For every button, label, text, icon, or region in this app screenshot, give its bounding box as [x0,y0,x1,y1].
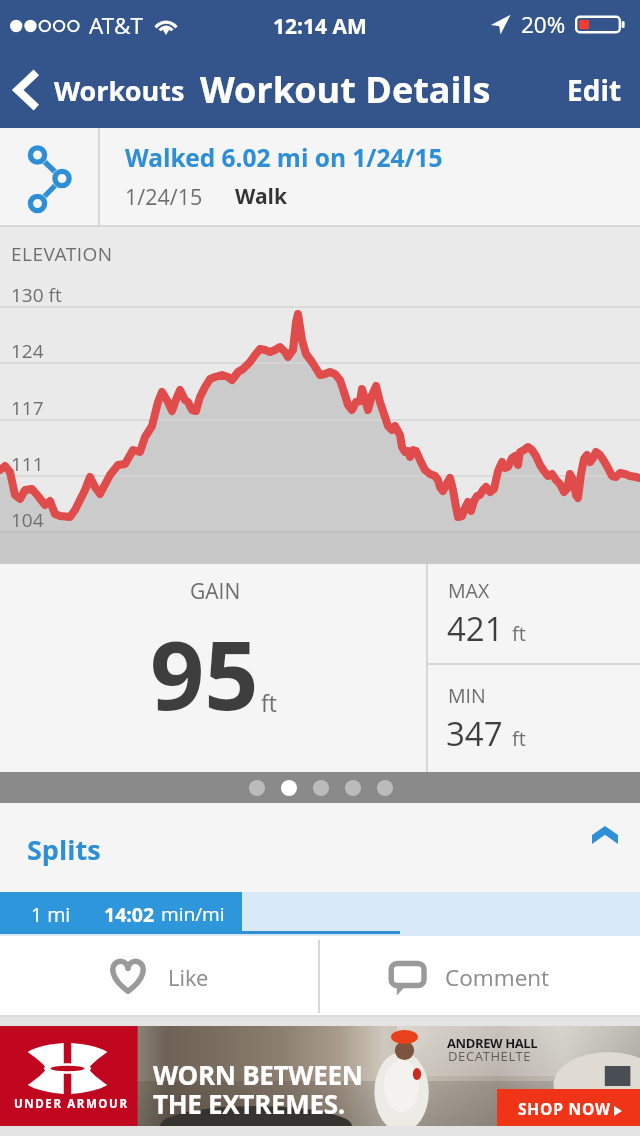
staticText: 130 ft [11,282,62,308]
staticText: min/mi [161,901,225,927]
staticText: 1/24/15 [125,182,203,211]
button[interactable]: MIN [427,665,640,772]
staticText: ft [512,725,526,752]
staticText: DECATHELTE [448,1047,532,1065]
button[interactable]: GAIN [0,564,427,772]
staticText: 117 [11,395,44,421]
staticText: Workouts [54,72,185,109]
staticText: Like [168,962,209,992]
button[interactable]: Walked 6.02 mi on 1/24/15 [0,128,640,227]
staticText: 20% [521,9,566,40]
button[interactable]: Like [0,936,319,1017]
staticText: ft [261,687,277,718]
staticText: 124 [11,338,44,364]
staticText: SHOP NOW [518,1098,611,1119]
staticText: Walk [235,182,287,211]
button[interactable]: Comment [319,936,640,1017]
staticText: 95 [150,608,259,737]
staticText: ELEVATION [11,241,113,267]
button[interactable]: UNDER ARMOUR [0,1026,640,1126]
staticText: 111 [11,451,44,477]
staticText: 12:14 AM [273,12,367,41]
staticText: Walked 6.02 mi on 1/24/15 [125,141,443,174]
staticText: Workout Details [200,65,491,114]
button[interactable]: MAX [427,564,640,665]
button[interactable]: Collapse splits [574,810,634,860]
staticText: WORN BETWEEN [153,1057,363,1092]
staticText: GAIN [190,577,241,606]
staticText: MIN [448,682,486,709]
staticText: 104 [11,507,44,533]
staticText: ft [512,620,526,647]
staticText: THE EXTREMES. [153,1086,345,1121]
staticText: Splits [27,831,101,868]
staticText: 347 [446,711,503,756]
staticText: 421 [447,606,504,651]
button[interactable]: Splits [0,803,640,892]
staticText: AT&T [89,10,143,41]
staticText: ANDREW HALL [447,1034,538,1052]
staticText: Comment [445,962,550,993]
staticText: 14:02 [104,901,155,928]
staticText: MAX [448,577,490,604]
staticText: UNDER ARMOUR [14,1096,129,1112]
button[interactable]: Edit [549,61,640,119]
staticText: Edit [567,71,622,109]
button[interactable]: 1 mi [0,892,640,931]
staticText: 1 mi [31,901,71,928]
button[interactable]: Workouts [0,70,193,110]
